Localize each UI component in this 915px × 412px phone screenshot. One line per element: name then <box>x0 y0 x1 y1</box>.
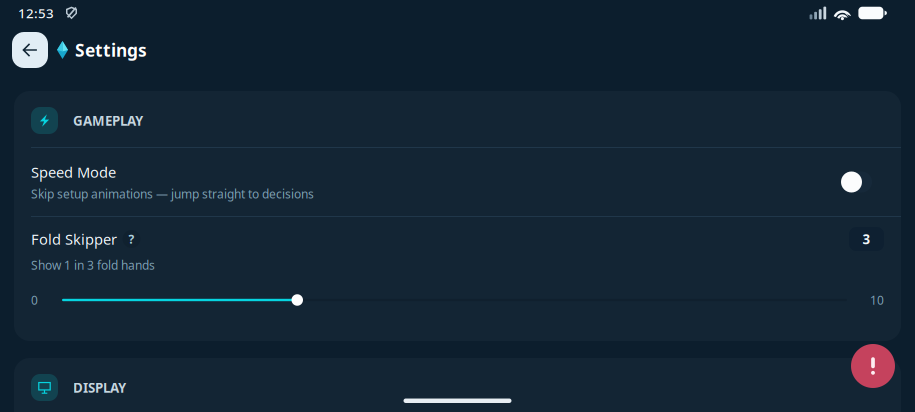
staticText: Skip setup animations — jump straight to… <box>31 186 314 202</box>
staticText: 10 <box>870 292 884 308</box>
button[interactable]: Back <box>12 32 48 68</box>
button[interactable]: Speed Mode <box>14 148 901 216</box>
staticText: 0 <box>31 292 38 308</box>
staticText: Speed Mode <box>31 162 116 182</box>
staticText: 3 <box>862 230 870 248</box>
button[interactable]: About Fold Skipper <box>117 226 146 252</box>
staticText: Settings <box>75 38 147 61</box>
staticText: ? <box>128 231 134 247</box>
staticText: DISPLAY <box>73 379 126 396</box>
staticText: Fold Skipper <box>31 229 117 249</box>
staticText: 12:53 <box>18 4 54 22</box>
staticText: Show 1 in 3 fold hands <box>31 257 155 273</box>
button[interactable]: Report an issue <box>851 344 895 388</box>
staticText: GAMEPLAY <box>73 112 143 129</box>
